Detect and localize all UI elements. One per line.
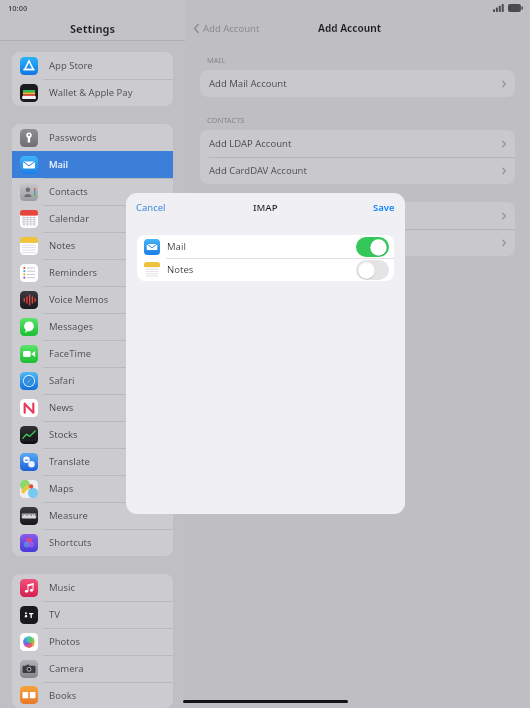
- staticText: Passwords: [49, 131, 97, 144]
- button[interactable]: Camera: [12, 655, 173, 682]
- staticText: Add LDAP Account: [209, 137, 501, 150]
- staticText: Camera: [49, 662, 84, 675]
- staticText: MAIL: [207, 55, 226, 65]
- button[interactable]: Toggle on: [356, 237, 389, 257]
- staticText: 10:00: [8, 3, 28, 13]
- button[interactable]: Passwords: [12, 124, 173, 151]
- staticText: CONTACTS: [207, 115, 245, 125]
- staticText: Messages: [49, 320, 94, 333]
- staticText: Add Account: [318, 21, 381, 35]
- button[interactable]: Music: [12, 574, 173, 601]
- staticText: News: [49, 401, 74, 414]
- button[interactable]: Messages: [12, 313, 173, 340]
- button[interactable]: Notes: [137, 258, 394, 281]
- staticText: Wallet & Apple Pay: [49, 86, 133, 99]
- button[interactable]: Mail: [12, 151, 173, 178]
- staticText: Add CardDAV Account: [209, 164, 501, 177]
- button[interactable]: Books: [12, 682, 173, 708]
- button[interactable]: Add CardDAV Account: [200, 157, 515, 184]
- staticText: Reminders: [49, 266, 98, 279]
- staticText: Contacts: [49, 185, 88, 198]
- staticText: Mail: [49, 158, 68, 171]
- staticText: Mail: [167, 240, 356, 253]
- button[interactable]: Contacts: [12, 178, 173, 205]
- button[interactable]: Calendar: [12, 205, 173, 232]
- staticText: Voice Memos: [49, 293, 109, 306]
- button[interactable]: Save: [363, 197, 405, 218]
- button[interactable]: App Store: [12, 52, 173, 79]
- button[interactable]: Reminders: [12, 259, 173, 286]
- button[interactable]: Photos: [12, 628, 173, 655]
- staticText: Calendar: [49, 212, 90, 225]
- button[interactable]: Maps: [12, 475, 173, 502]
- button[interactable]: Measure: [12, 502, 173, 529]
- button[interactable]: TV: [12, 601, 173, 628]
- staticText: Settings: [70, 21, 116, 36]
- staticText: Save: [373, 201, 395, 214]
- staticText: Music: [49, 581, 76, 594]
- staticText: Shortcuts: [49, 536, 92, 549]
- button[interactable]: FaceTime: [12, 340, 173, 367]
- button[interactable]: Add LDAP Account: [200, 130, 515, 157]
- button[interactable]: News: [12, 394, 173, 421]
- button[interactable]: [200, 202, 515, 229]
- staticText: Translate: [49, 455, 90, 468]
- staticText: FaceTime: [49, 347, 92, 360]
- staticText: Books: [49, 689, 77, 702]
- button[interactable]: Mail: [137, 235, 394, 258]
- staticText: Add Mail Account: [209, 77, 501, 90]
- button[interactable]: Add Mail Account: [200, 70, 515, 97]
- staticText: [209, 236, 501, 249]
- staticText: Cancel: [136, 201, 166, 214]
- button[interactable]: Shortcuts: [12, 529, 173, 556]
- button[interactable]: Translate: [12, 448, 173, 475]
- button[interactable]: Voice Memos: [12, 286, 173, 313]
- staticText: Safari: [49, 374, 75, 387]
- staticText: Maps: [49, 482, 74, 495]
- button[interactable]: Safari: [12, 367, 173, 394]
- button[interactable]: Wallet & Apple Pay: [12, 79, 173, 106]
- button[interactable]: Add Account: [191, 20, 262, 37]
- staticText: Add Account: [203, 22, 260, 35]
- staticText: Stocks: [49, 428, 78, 441]
- staticText: Photos: [49, 635, 81, 648]
- staticText: App Store: [49, 59, 93, 72]
- button[interactable]: Notes: [12, 232, 173, 259]
- button[interactable]: [200, 229, 515, 256]
- staticText: Measure: [49, 509, 88, 522]
- staticText: [209, 209, 501, 222]
- staticText: Notes: [167, 263, 356, 276]
- staticText: TV: [49, 608, 60, 621]
- staticText: IMAP: [253, 201, 278, 214]
- button[interactable]: Cancel: [126, 197, 176, 218]
- staticText: Notes: [49, 239, 76, 252]
- button[interactable]: Stocks: [12, 421, 173, 448]
- button[interactable]: Toggle off: [356, 260, 389, 280]
